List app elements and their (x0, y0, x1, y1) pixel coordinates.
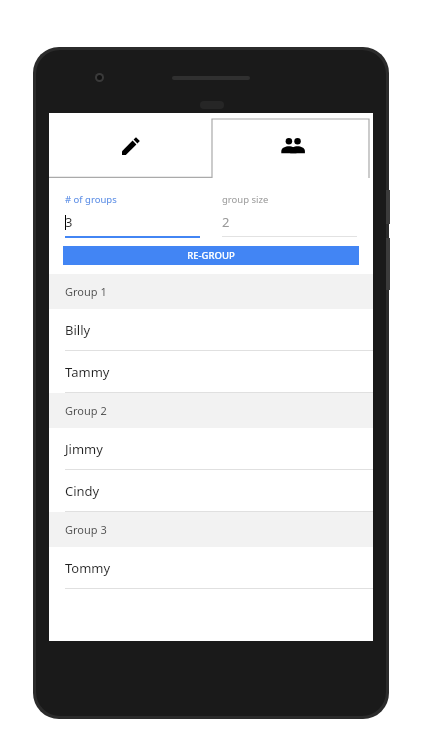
button[interactable]: Group 3 (49, 512, 373, 547)
staticText: Group 1 (65, 284, 107, 299)
button[interactable]: # of groups (65, 193, 200, 238)
button[interactable]: Groups tab (212, 113, 373, 178)
staticText: Cindy (65, 482, 100, 500)
button[interactable]: group size (222, 193, 357, 237)
button[interactable]: Billy (49, 309, 373, 351)
button[interactable]: Group 2 (49, 393, 373, 428)
button[interactable]: Jimmy (49, 428, 373, 470)
staticText: Tommy (65, 559, 111, 577)
staticText: Tammy (65, 363, 110, 381)
staticText: 3 (65, 213, 73, 231)
staticText: Group 3 (65, 522, 107, 537)
staticText: # of groups (65, 193, 117, 206)
button[interactable]: RE-GROUP (63, 246, 359, 265)
staticText: Jimmy (65, 440, 103, 458)
staticText: RE-GROUP (187, 249, 235, 262)
staticText: 2 (222, 213, 230, 231)
button[interactable]: Tommy (49, 547, 373, 589)
staticText: group size (222, 193, 269, 206)
staticText: Group 2 (65, 403, 107, 418)
button[interactable]: Tammy (49, 351, 373, 393)
button[interactable]: Cindy (49, 470, 373, 512)
staticText: Billy (65, 321, 91, 339)
button[interactable]: Edit names tab (49, 113, 212, 178)
button[interactable]: Group 1 (49, 274, 373, 309)
